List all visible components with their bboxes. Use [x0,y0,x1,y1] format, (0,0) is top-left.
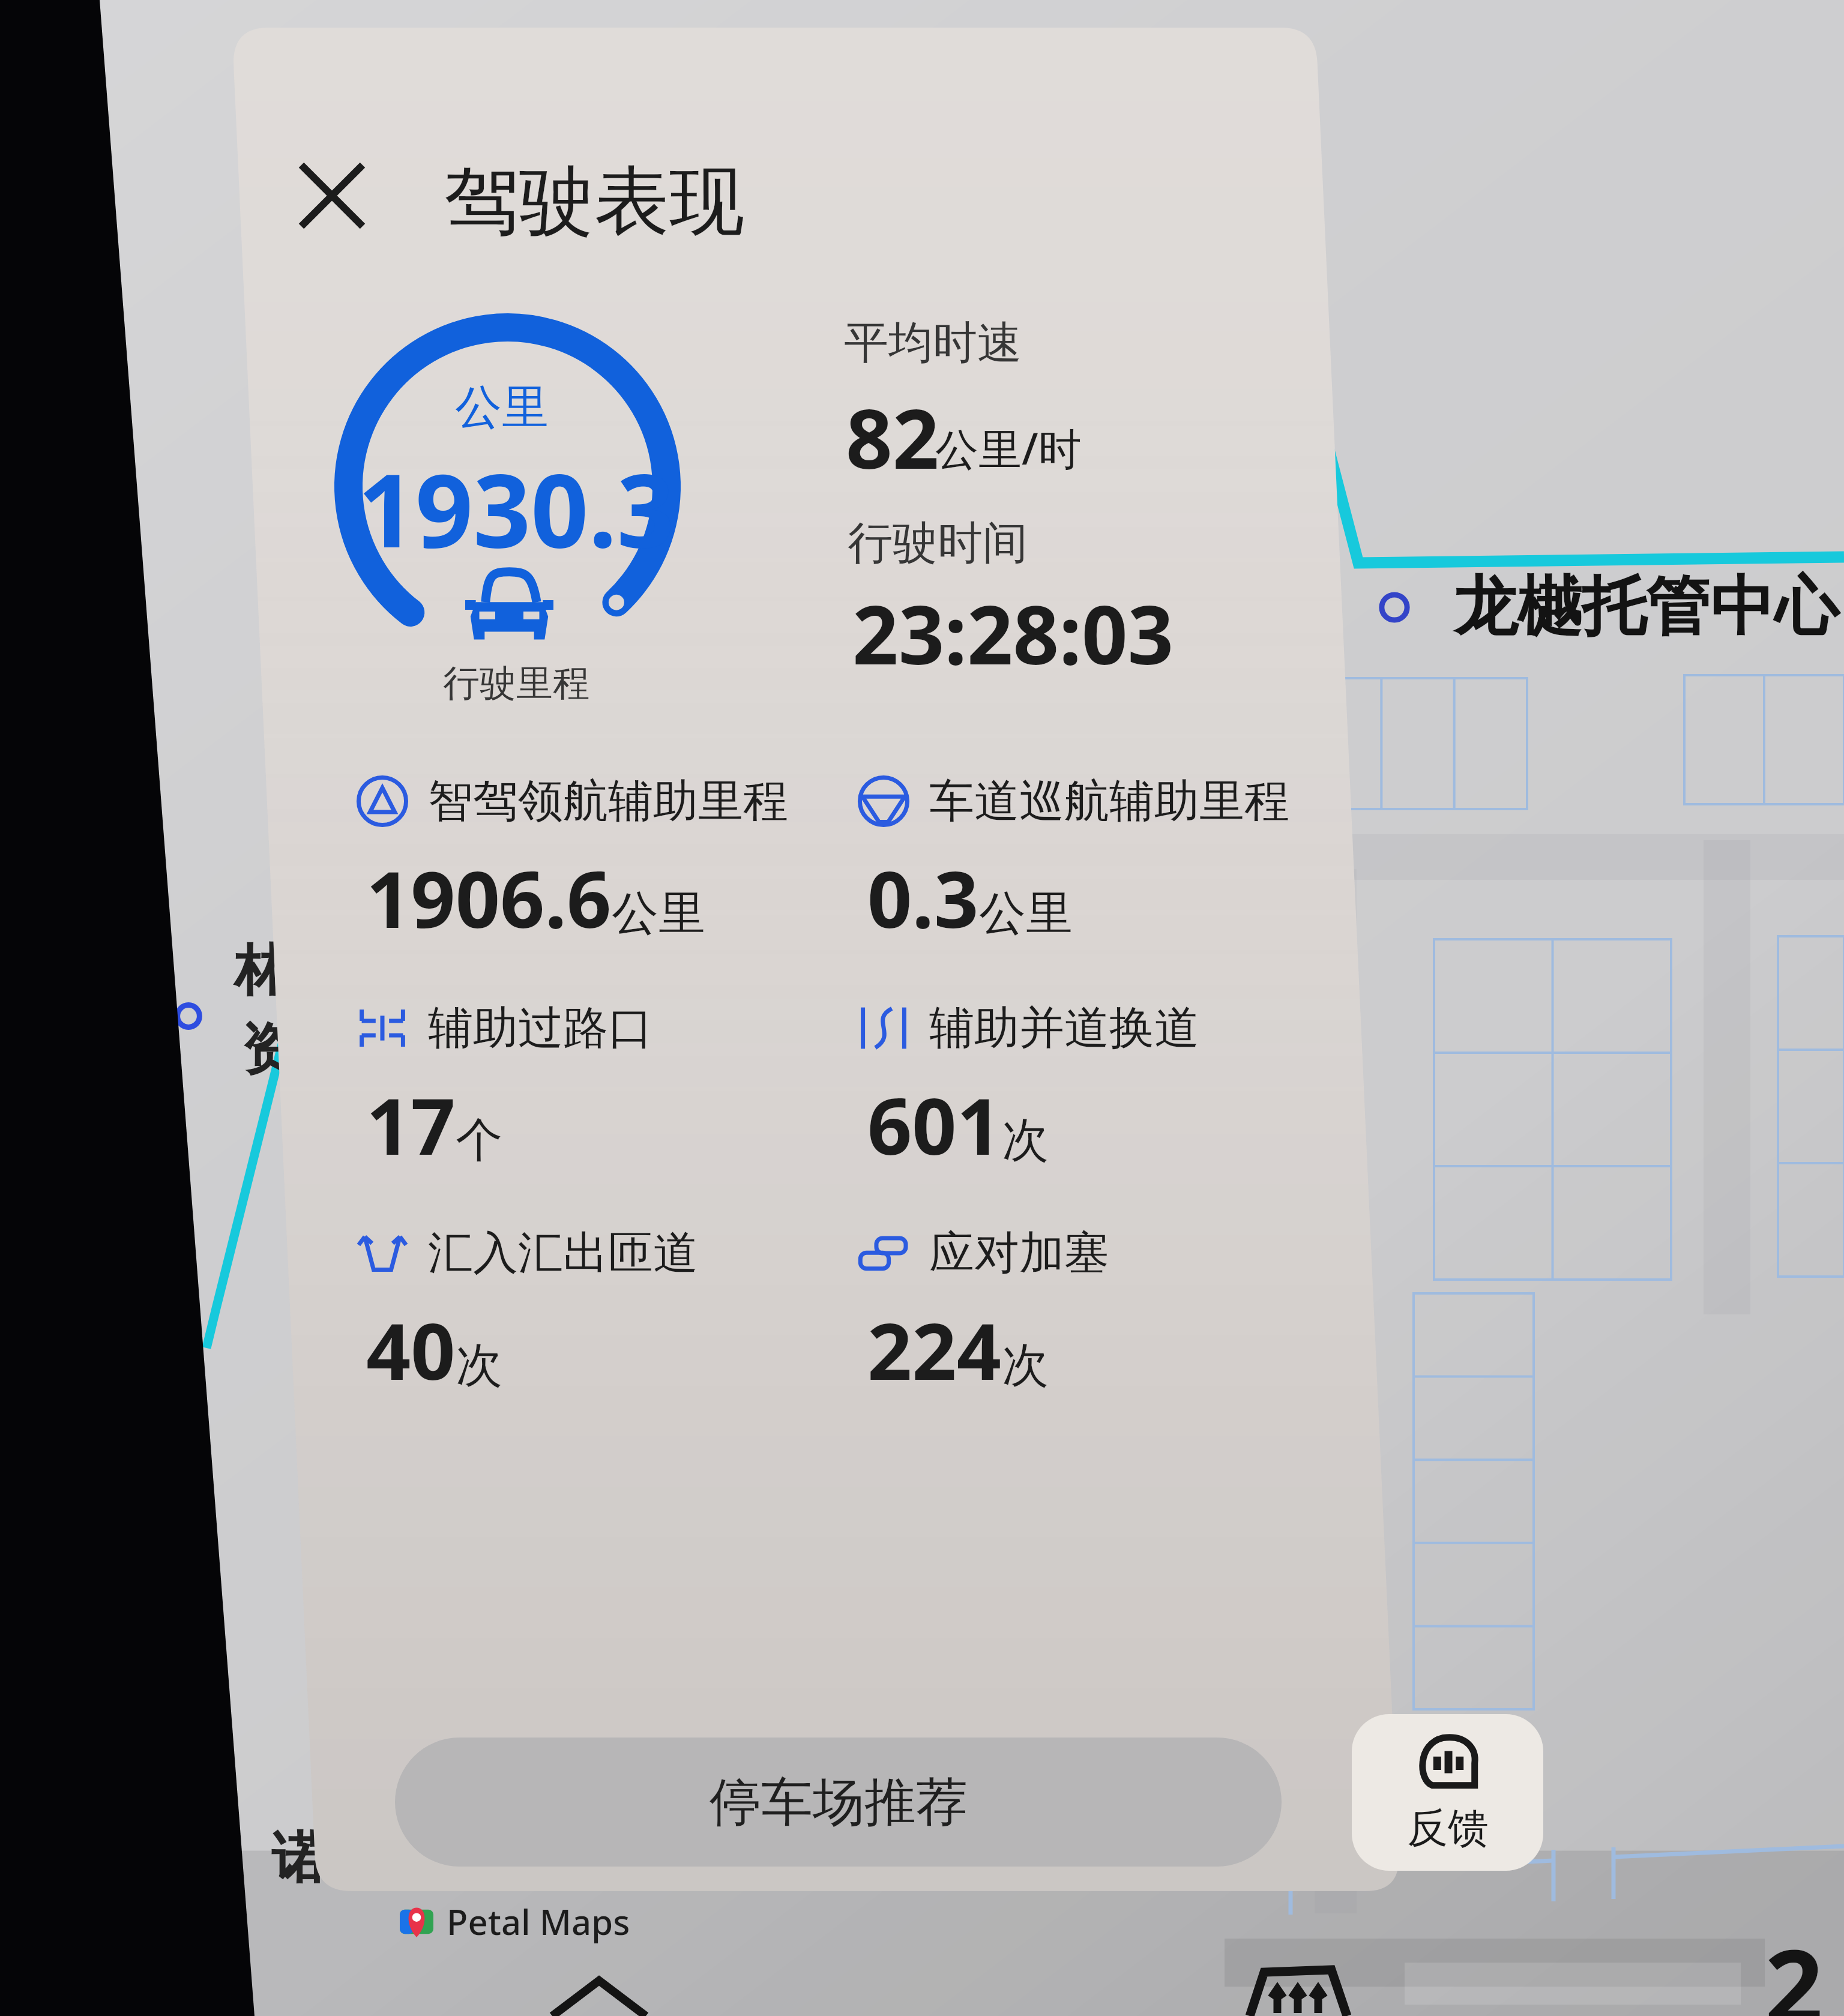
button[interactable]: Close [284,148,380,244]
staticText: 驾驶表现 [444,155,744,249]
staticText: 0.3 [867,844,979,951]
staticText: 车道巡航辅助里程 [929,773,1289,829]
staticText: 17 [366,1071,456,1178]
staticText: Petal Maps [447,1898,630,1945]
staticText: 40 [366,1296,456,1403]
staticText: 诺 [271,1823,327,1893]
button[interactable]: Home [540,1951,678,2016]
staticText: 应对加塞 [929,1225,1109,1281]
staticText: 82 [846,382,939,493]
staticText: 次 [1002,1111,1049,1170]
staticText: 资 [241,1015,297,1085]
staticText: 224 [867,1296,1002,1403]
staticText: 行驶时间 [848,515,1028,571]
staticText: 公里 [979,884,1073,943]
staticText: 公里 [612,884,705,943]
staticText: 个 [456,1111,502,1170]
staticText: 辅助过路口 [428,1000,653,1056]
staticText: 1930.3 [358,439,675,577]
staticText: 辅助并道换道 [929,1000,1199,1056]
staticText: 2 [1765,1915,1824,2016]
button[interactable]: 停车场推荐 [395,1738,1282,1867]
staticText: 龙樾托管中心 [1453,567,1839,648]
staticText: 次 [1002,1336,1049,1395]
button[interactable]: Feedback [1352,1714,1543,1871]
staticText: 次 [456,1336,502,1395]
staticText: 平均时速 [844,315,1022,371]
staticText: 智驾领航辅助里程 [428,773,788,829]
staticText: 停车场推荐 [710,1770,968,1835]
staticText: 行驶里程 [443,660,589,706]
staticText: 23:28:03 [852,579,1174,688]
button[interactable]: Seat heating [1237,1951,1369,2016]
staticText: 林 [234,936,289,1005]
staticText: 反馈 [1407,1803,1489,1855]
staticText: 1906.6 [366,844,612,951]
staticText: 601 [867,1071,1002,1178]
staticText: 公里 [455,378,549,437]
staticText: 汇入汇出匝道 [428,1225,698,1281]
staticText: 公里/时 [935,418,1082,477]
button[interactable]: Petal Maps [400,1898,630,1945]
